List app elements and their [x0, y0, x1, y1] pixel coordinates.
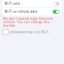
staticText: Wi-Fi only: [4, 2, 20, 5]
staticText: We won't upload large files over cellula…: [3, 17, 53, 27]
button[interactable]: Unless working over Wi-Fi: [0, 27, 64, 35]
staticText: Wi-Fi or cellular data: [4, 10, 37, 13]
button[interactable]: Wi-Fi only: [2, 0, 62, 8]
button[interactable]: Wi-Fi or cellular data: [2, 8, 62, 15]
staticText: Unless working over Wi-Fi: [10, 30, 49, 34]
